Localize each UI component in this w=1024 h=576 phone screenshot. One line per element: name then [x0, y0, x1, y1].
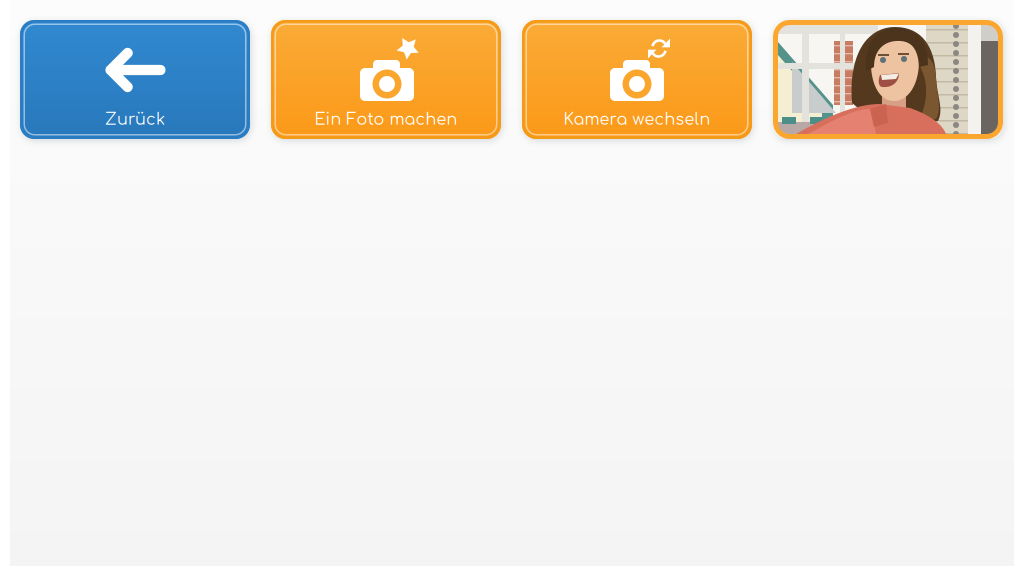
button[interactable]: Kamera wechseln [522, 20, 752, 139]
button[interactable]: Ein Foto machen [271, 20, 501, 139]
staticText: Ein Foto machen [314, 111, 457, 128]
button[interactable]: Zurück [20, 20, 250, 139]
button[interactable]: Letztes Foto [773, 20, 1003, 139]
staticText: Zurück [105, 111, 165, 128]
staticText: Kamera wechseln [563, 111, 710, 128]
